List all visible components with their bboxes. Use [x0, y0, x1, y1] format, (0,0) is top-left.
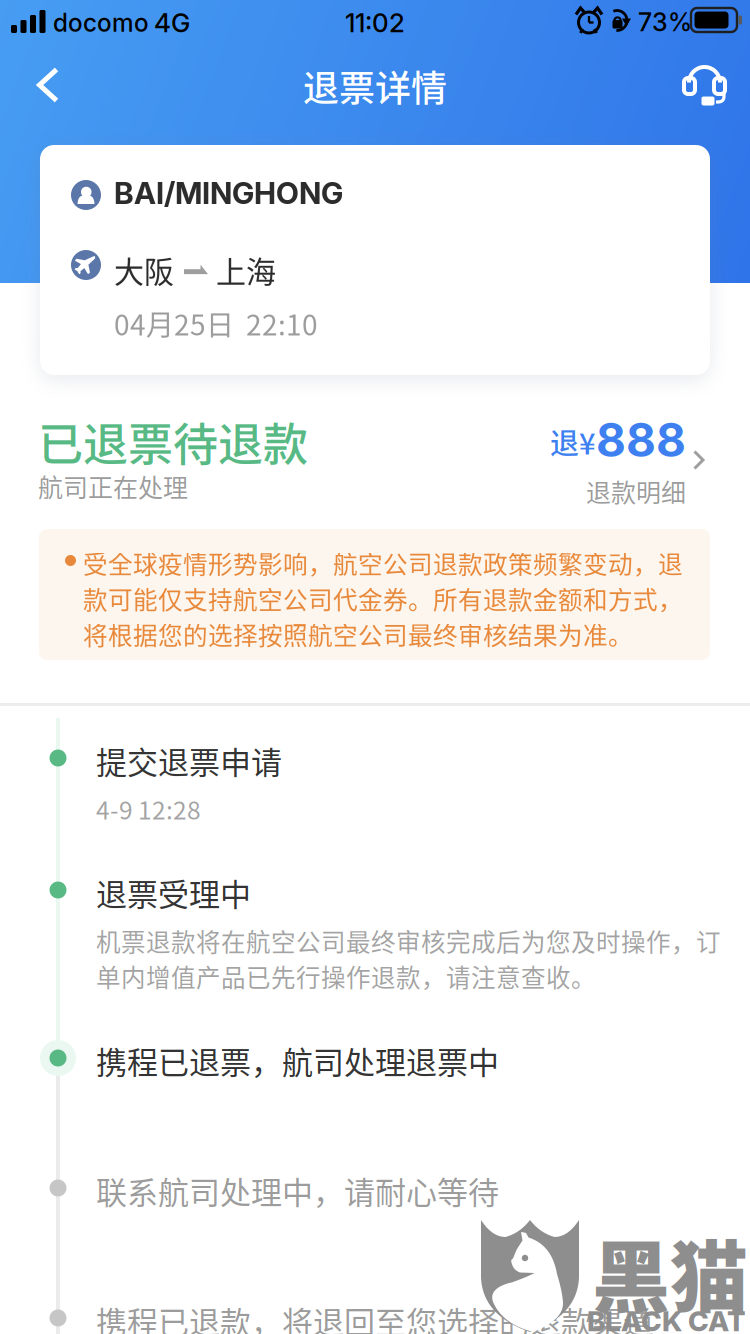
staticText: 退票详情 [303, 60, 447, 112]
staticText: BAI/MINGHONG [114, 175, 343, 211]
staticText: 携程已退票，航司处理退票中 [96, 1038, 499, 1083]
staticText: BLACK CAT [587, 1304, 746, 1334]
button[interactable]: 在线客服 [662, 44, 748, 124]
staticText: 11:02 [345, 7, 405, 38]
staticText: 携程已退款，将退回至您选择的退款渠道 [96, 1298, 654, 1334]
staticText: 黑猫 [592, 1216, 748, 1329]
staticText: 受全球疫情形势影响，航空公司退款政策频繁变动，退款可能仅支持航空公司代金券。所有… [83, 545, 683, 652]
button[interactable]: 返回 [8, 45, 88, 125]
staticText: 已退票待退款 [38, 409, 308, 474]
staticText: 退款明细 [586, 473, 686, 509]
staticText: 4-9 12:28 [96, 791, 201, 826]
staticText: 机票退款将在航空公司最终审核完成后为您及时操作，订单内增值产品已先行操作退款，请… [96, 923, 721, 994]
staticText: 联系航司处理中，请耐心等待 [96, 1168, 499, 1213]
staticText: 上海 [216, 248, 276, 291]
staticText: 大阪 [114, 248, 174, 291]
staticText: 73% [638, 7, 692, 37]
staticText: docomo [53, 8, 149, 38]
button[interactable]: 退¥ [498, 414, 748, 512]
staticText: 提交退票申请 [96, 738, 282, 783]
staticText: 04月25日 22:10 [114, 303, 318, 343]
staticText: 退票受理中 [96, 870, 251, 915]
staticText: 888 [596, 412, 686, 468]
staticText: 退¥ [550, 421, 596, 463]
staticText: 航司正在处理 [38, 468, 188, 504]
staticText: 4G [154, 7, 190, 38]
